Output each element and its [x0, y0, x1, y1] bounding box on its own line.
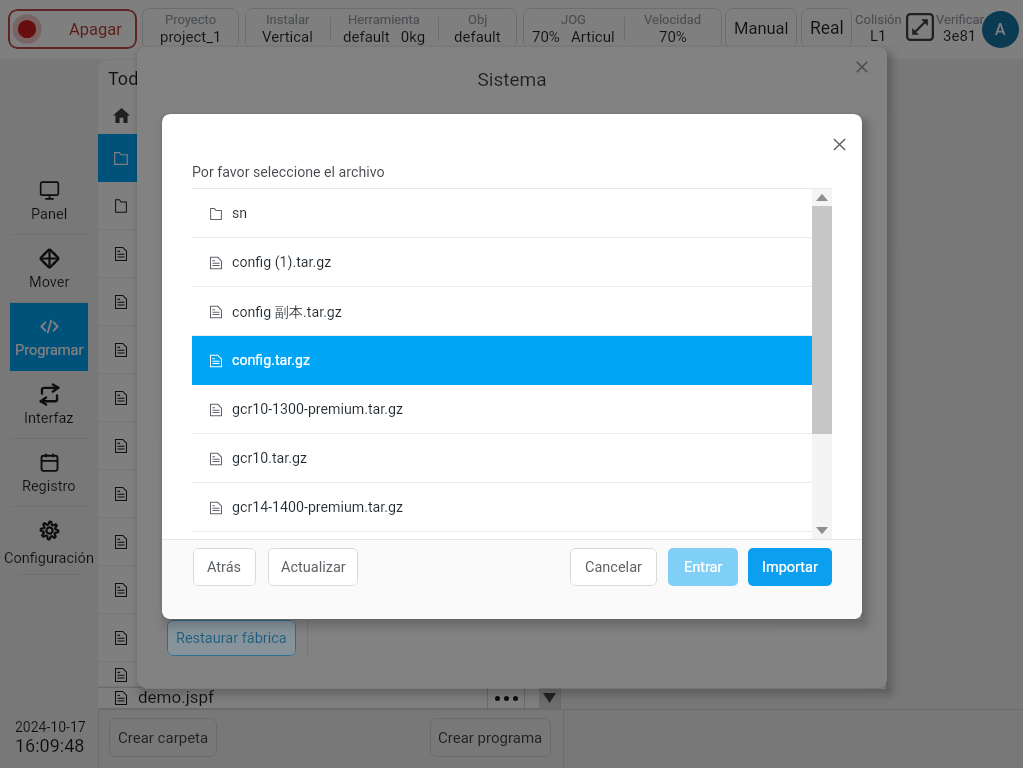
staticText: A	[995, 20, 1006, 39]
button[interactable]: Mover	[10, 235, 88, 303]
button[interactable]: Interfaz	[10, 371, 88, 439]
button[interactable]: Crear programa	[430, 718, 551, 757]
staticText: project_1	[160, 28, 222, 46]
button[interactable]: gcr14-1400-premium.tar.gz	[192, 483, 812, 532]
staticText: Configuración	[1, 550, 97, 567]
staticText: gcr10.tar.gz	[232, 450, 307, 467]
button[interactable]: demo.jspf	[98, 687, 561, 709]
button[interactable]: sn	[192, 189, 812, 238]
staticText: Cancelar	[585, 559, 642, 576]
button[interactable]	[98, 518, 561, 566]
staticText: Todos los programas	[108, 68, 278, 89]
button[interactable]: Atrás	[193, 548, 256, 586]
button[interactable]	[98, 182, 561, 230]
button[interactable]: Programar	[10, 303, 88, 371]
staticText: Velocidad	[644, 12, 702, 27]
staticText: Herramienta	[348, 12, 420, 27]
button[interactable]	[98, 374, 561, 422]
button[interactable]	[10, 507, 88, 575]
button[interactable]	[98, 566, 561, 614]
button[interactable]	[98, 614, 561, 662]
staticText: Interfaz	[24, 410, 74, 427]
button[interactable]	[98, 230, 561, 278]
button[interactable]	[98, 278, 561, 326]
staticText: Proyecto	[165, 12, 217, 27]
staticText: JOG	[561, 12, 586, 27]
staticText: demo.jspf	[138, 687, 214, 707]
button[interactable]	[98, 470, 561, 518]
button[interactable]	[98, 96, 561, 134]
staticText: Crear programa	[438, 729, 543, 747]
staticText: 2024-10-17	[15, 719, 86, 735]
staticText: Por favor seleccione el archivo	[192, 164, 385, 181]
button[interactable]: Panel	[10, 167, 88, 235]
staticText: Obj	[468, 12, 488, 27]
button[interactable]: Importar	[748, 548, 832, 586]
button[interactable]: config (1).tar.gz	[192, 238, 812, 287]
staticText: gcr10-1300-premium.tar.gz	[232, 401, 404, 418]
staticText: sn	[232, 205, 248, 222]
staticText: config.tar.gz	[232, 352, 310, 369]
staticText: Restaurar fábrica	[176, 630, 287, 647]
staticText: config 副本.tar.gz	[232, 303, 342, 321]
button[interactable]	[98, 326, 561, 374]
staticText: Sistema	[137, 68, 887, 90]
button[interactable]: config.tar.gz	[192, 336, 812, 385]
staticText: Registro	[22, 478, 76, 495]
staticText: Vertical	[262, 28, 313, 46]
button[interactable]	[98, 134, 561, 182]
button[interactable]: Expandir	[539, 687, 560, 709]
staticText: Real	[810, 18, 844, 39]
staticText: Verificar	[936, 12, 984, 27]
button[interactable]: Crear carpeta	[109, 718, 217, 757]
staticText: Programar	[15, 342, 84, 359]
staticText: default 0kg	[343, 28, 426, 46]
staticText: Atrás	[207, 559, 242, 576]
staticText: gcr14-1400-premium.tar.gz	[232, 499, 404, 516]
button[interactable]: Registro	[10, 439, 88, 507]
button[interactable]	[98, 662, 561, 687]
button[interactable]: Actualizar	[268, 548, 358, 586]
staticText: L1	[870, 27, 887, 45]
staticText: Importar	[762, 559, 818, 576]
staticText: Entrar	[684, 559, 723, 576]
staticText: 16:09:48	[15, 735, 85, 756]
button[interactable]: gcr10.tar.gz	[192, 434, 812, 483]
staticText: Actualizar	[281, 559, 346, 576]
staticText: Instalar	[266, 12, 310, 27]
staticText: Mover	[29, 274, 70, 291]
staticText: Colisión	[855, 12, 902, 27]
button[interactable]: Cerrar	[831, 136, 848, 153]
staticText: default	[454, 28, 501, 46]
button[interactable]: Cancelar	[570, 548, 657, 586]
button[interactable]: config 副本.tar.gz	[192, 287, 812, 336]
button[interactable]: Entrar	[668, 548, 738, 586]
button[interactable]: Cerrar	[854, 59, 870, 75]
staticText: Crear carpeta	[118, 729, 209, 747]
button[interactable]: gcr10-1300-premium.tar.gz	[192, 385, 812, 434]
button[interactable]: Pantalla completa	[906, 13, 934, 41]
button[interactable]: Manual	[725, 8, 797, 49]
staticText: Apagar	[69, 20, 122, 39]
staticText: Panel	[31, 206, 68, 223]
staticText: 3e81	[943, 27, 977, 45]
staticText: Manual	[734, 19, 789, 38]
button[interactable]: Restaurar fábrica	[167, 620, 296, 656]
button[interactable]	[98, 422, 561, 470]
staticText: 70% Articul	[532, 28, 615, 46]
staticText: 70%	[659, 28, 687, 46]
button[interactable]: A	[982, 11, 1019, 48]
staticText: config (1).tar.gz	[232, 254, 332, 271]
button[interactable]: Más opciones	[488, 687, 524, 709]
button[interactable]: Apagar	[8, 9, 137, 49]
button[interactable]: Real	[801, 8, 852, 49]
